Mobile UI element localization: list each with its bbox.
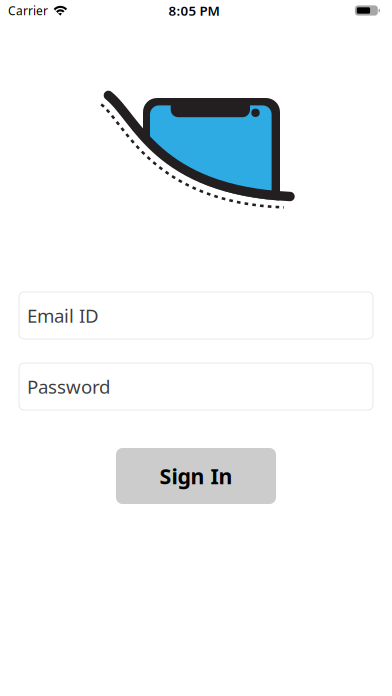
button[interactable]: Sign In (116, 448, 276, 504)
staticText: 8:05 PM (168, 2, 219, 19)
staticText: Email ID (27, 303, 99, 328)
staticText: Carrier (8, 2, 48, 18)
button[interactable]: Email ID (19, 292, 373, 339)
staticText: Password (27, 374, 110, 399)
button[interactable]: Password (19, 363, 373, 410)
staticText: Sign In (159, 462, 232, 490)
